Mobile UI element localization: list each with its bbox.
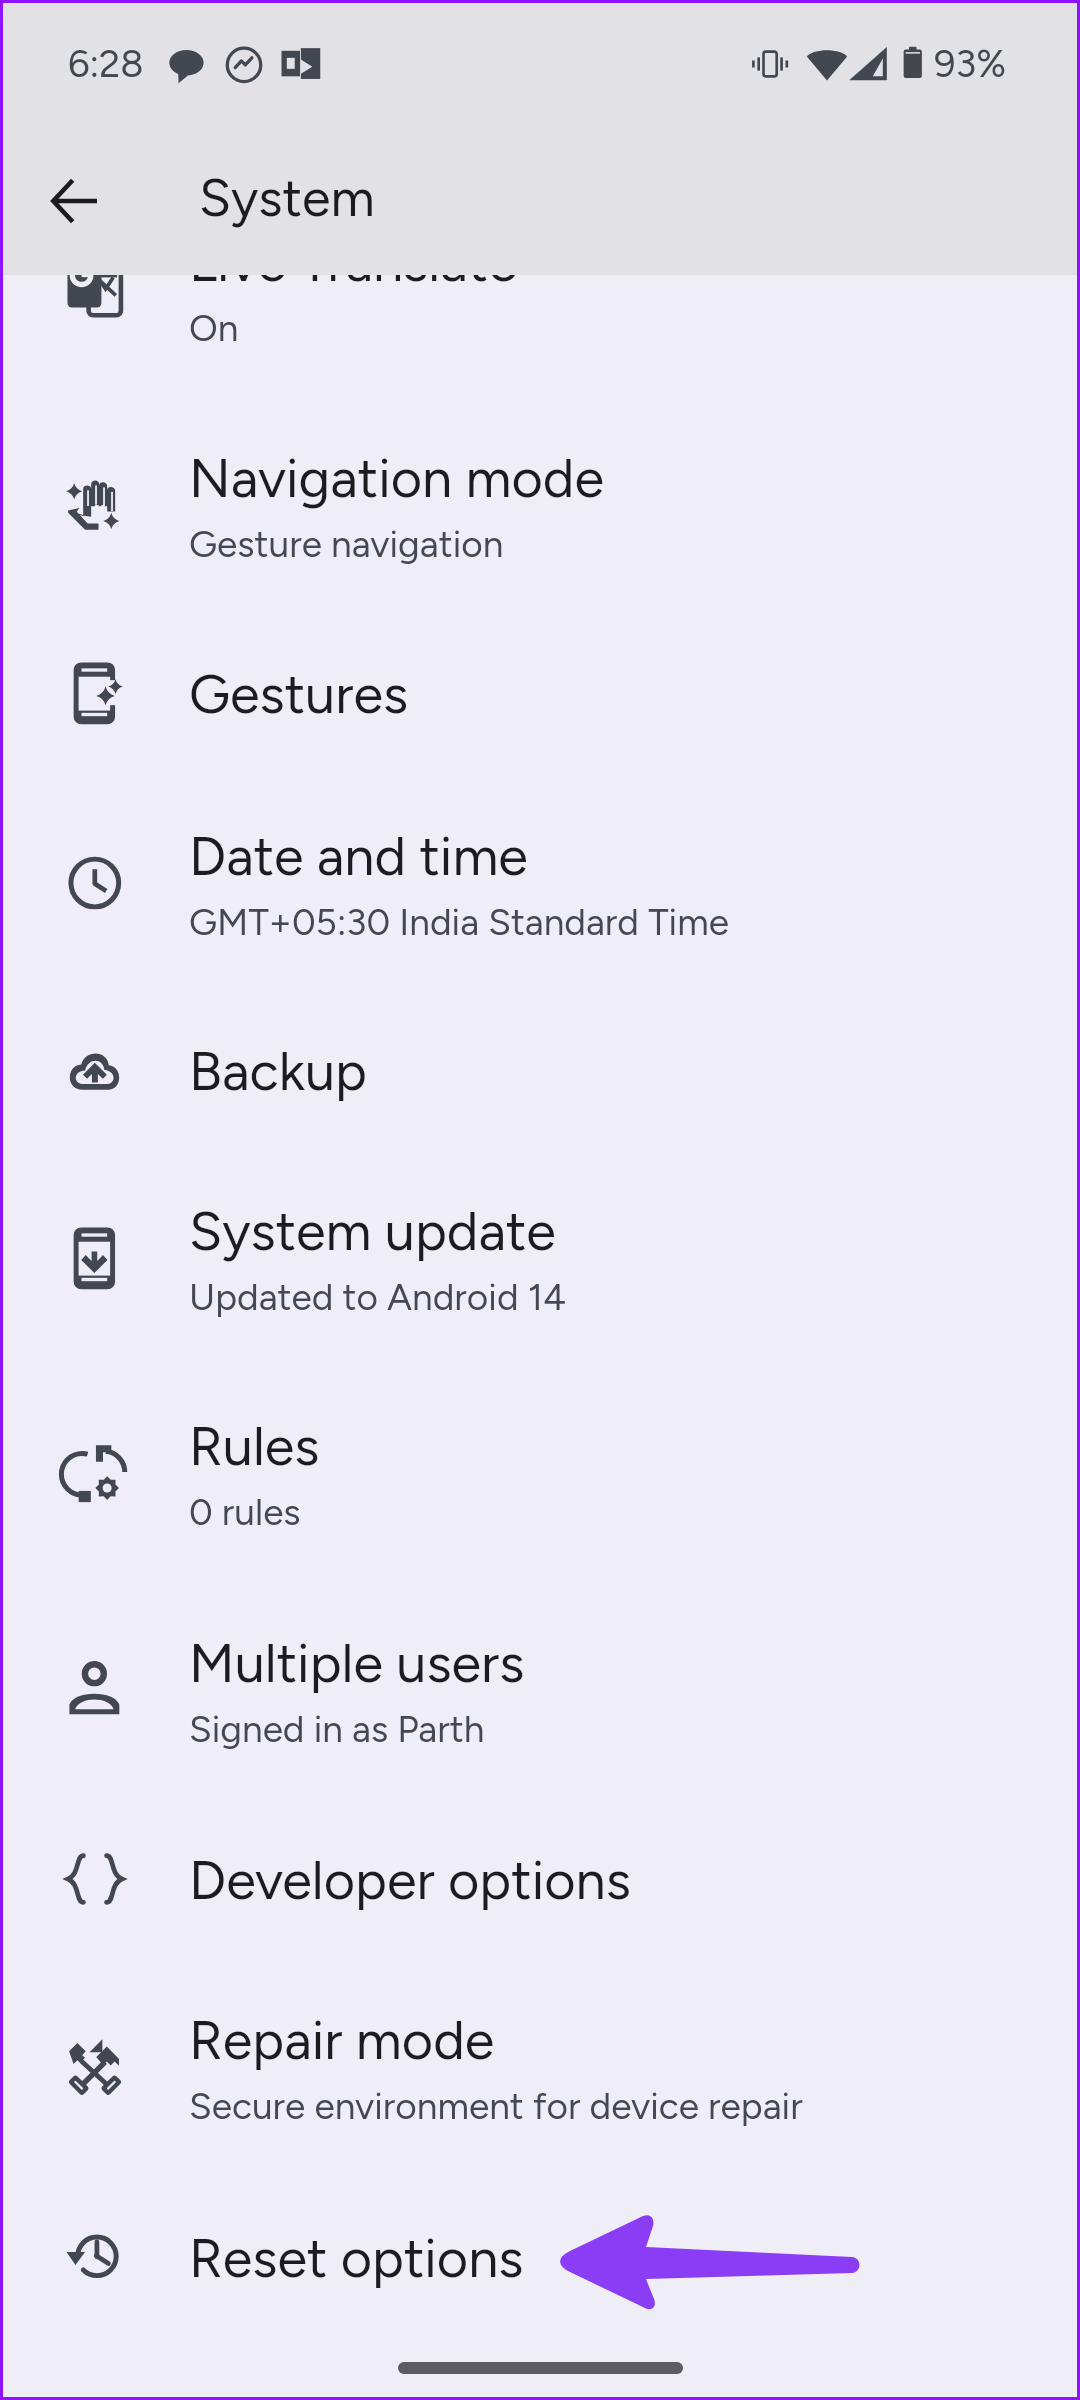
staticText: Updated to Android 14	[189, 1275, 566, 1319]
button[interactable]: Gestures	[0, 632, 1080, 792]
staticText: Signed in as Parth	[189, 1707, 485, 1751]
button[interactable]: Live Translate	[0, 172, 1080, 368]
staticText: Reset options	[189, 2226, 524, 2291]
staticText: Navigation mode	[189, 446, 604, 511]
staticText: Multiple users	[189, 1631, 525, 1696]
button[interactable]: System update	[0, 1141, 1080, 1337]
staticText: Secure environment for device repair	[189, 2084, 803, 2128]
button[interactable]: Backup	[0, 1009, 1080, 1169]
button[interactable]: Repair mode	[0, 1950, 1080, 2146]
staticText: Rules	[189, 1414, 320, 1479]
staticText: System	[199, 167, 375, 229]
button[interactable]: Navigation mode	[0, 388, 1080, 584]
staticText: Developer options	[189, 1848, 631, 1913]
staticText: 93%	[934, 41, 1007, 87]
staticText: Gesture navigation	[189, 522, 504, 566]
staticText: Backup	[189, 1039, 367, 1104]
button[interactable]: Back	[22, 149, 126, 253]
staticText: Date and time	[189, 824, 528, 889]
button[interactable]: Rules	[0, 1356, 1080, 1552]
button[interactable]: Multiple users	[0, 1573, 1080, 1769]
staticText: Live Translate	[189, 230, 518, 295]
staticText: On	[189, 306, 239, 350]
staticText: GMT+05:30 India Standard Time	[189, 900, 729, 944]
staticText: Repair mode	[189, 2008, 495, 2073]
staticText: 0 rules	[189, 1490, 301, 1534]
button[interactable]: Developer options	[0, 1818, 1080, 1978]
staticText: Gestures	[189, 662, 409, 727]
button[interactable]: Reset options	[0, 2196, 1080, 2356]
staticText: System update	[189, 1199, 556, 1264]
staticText: 6:28	[68, 41, 144, 87]
button[interactable]: Date and time	[0, 766, 1080, 962]
